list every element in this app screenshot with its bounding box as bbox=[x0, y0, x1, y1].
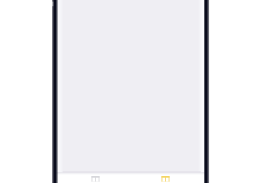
button[interactable]: Saved bbox=[150, 174, 180, 183]
other: Content bbox=[57, 0, 205, 173]
button[interactable]: Home bbox=[80, 174, 110, 183]
